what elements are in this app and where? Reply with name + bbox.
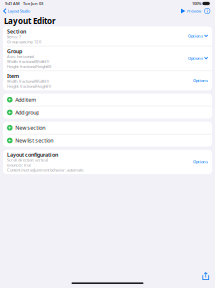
staticText: Items: 7 bbox=[7, 34, 21, 39]
staticText: Height: fractionalHeight(0) bbox=[7, 64, 51, 69]
button[interactable]: Preview bbox=[181, 7, 201, 15]
staticText: Group spacing: 12.0 bbox=[7, 39, 41, 44]
staticText: Item bbox=[7, 72, 19, 79]
staticText: Width: fractionalWidth(1) bbox=[7, 79, 49, 84]
staticText: 9:41 AM bbox=[5, 1, 20, 6]
button[interactable]: Share bbox=[198, 268, 213, 283]
staticText: Tue Jun 03 bbox=[20, 1, 43, 6]
staticText: New list section bbox=[15, 137, 53, 144]
staticText: Layout Editor bbox=[4, 16, 56, 26]
staticText: Options bbox=[188, 33, 203, 38]
button[interactable]: Options bbox=[187, 54, 209, 62]
staticText: Height: fractionalHeight(1) bbox=[7, 84, 51, 89]
button[interactable]: Options bbox=[187, 32, 209, 39]
staticText: 100% bbox=[192, 1, 201, 6]
staticText: Scroll direction: vertical bbox=[7, 157, 48, 163]
staticText: Content inset adjustment behavior: autom… bbox=[7, 167, 84, 173]
button[interactable]: Layout Studio bbox=[0, 7, 30, 15]
staticText: Preview bbox=[187, 8, 201, 14]
staticText: Axis: horizontal bbox=[7, 54, 34, 59]
button[interactable]: Add item bbox=[3, 94, 212, 106]
staticText: Add item bbox=[15, 96, 36, 103]
staticText: Add group bbox=[15, 109, 39, 116]
staticText: Options bbox=[193, 78, 208, 83]
staticText: Options bbox=[193, 159, 208, 164]
button[interactable]: New section bbox=[3, 122, 212, 134]
button[interactable]: Options bbox=[192, 77, 209, 84]
staticText: Group bbox=[7, 48, 22, 55]
button[interactable]: Options bbox=[192, 158, 209, 165]
button[interactable]: New list section bbox=[3, 134, 212, 147]
staticText: Bounces: true bbox=[7, 162, 31, 168]
staticText: Section bbox=[7, 28, 26, 35]
staticText: New section bbox=[15, 124, 45, 131]
staticText: Options bbox=[188, 55, 203, 61]
staticText: Width: fractionalWidth(1) bbox=[7, 59, 49, 64]
staticText: Layout configuration bbox=[7, 151, 58, 158]
staticText: Layout Studio bbox=[8, 8, 30, 14]
button[interactable]: Info bbox=[201, 7, 215, 15]
button[interactable]: Add group bbox=[3, 106, 212, 118]
